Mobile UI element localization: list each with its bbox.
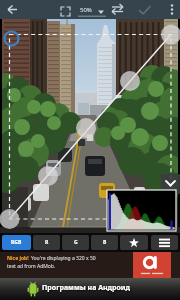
staticText: You're displaying a 320 x 50 [31,255,96,262]
button[interactable]: Nice job! [0,252,180,278]
button[interactable] [108,0,128,19]
staticText: RGB [11,239,22,246]
button[interactable] [76,0,106,19]
button[interactable]: B [91,235,118,250]
button[interactable] [120,235,148,250]
staticText: Nice job! [7,255,29,262]
button[interactable] [151,235,178,250]
button[interactable]: G [62,235,89,250]
button[interactable] [2,0,24,19]
button[interactable]: Программы на Андроид [0,278,180,300]
staticText: G [74,239,78,246]
button[interactable]: R [33,235,60,250]
button[interactable] [134,0,156,19]
staticText: B [103,239,107,246]
button[interactable] [107,190,176,231]
staticText: 50% [80,6,92,14]
button[interactable] [162,0,180,19]
button[interactable] [161,174,180,194]
staticText: test ad from AdMob. [7,263,56,270]
staticText: R [45,239,49,246]
staticText: Программы на Андроид [42,283,131,293]
button[interactable] [56,0,76,19]
button[interactable]: RGB [2,235,31,250]
